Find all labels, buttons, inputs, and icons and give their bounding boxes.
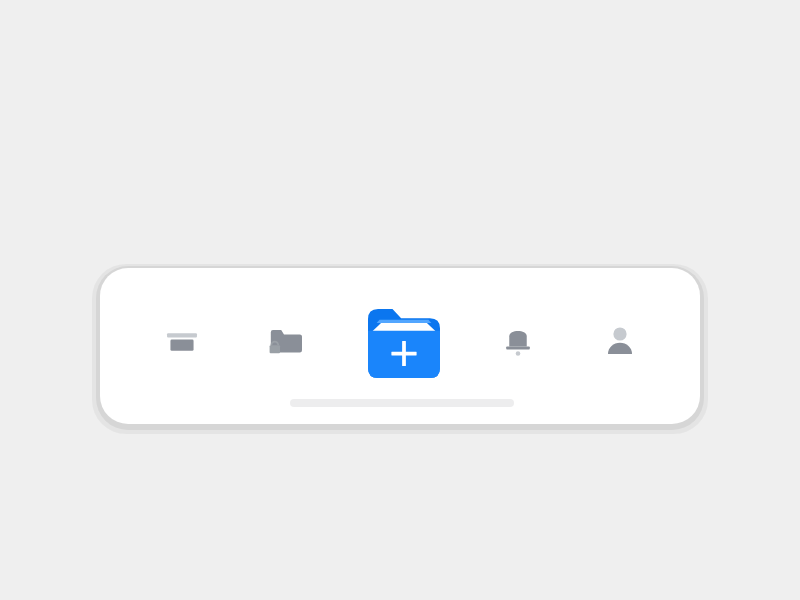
button[interactable]: Account — [584, 306, 656, 378]
button[interactable]: Locked folder — [248, 306, 320, 378]
button[interactable]: Archive — [146, 306, 218, 378]
button[interactable]: New folder — [366, 306, 442, 378]
button[interactable]: Notifications — [482, 306, 554, 378]
